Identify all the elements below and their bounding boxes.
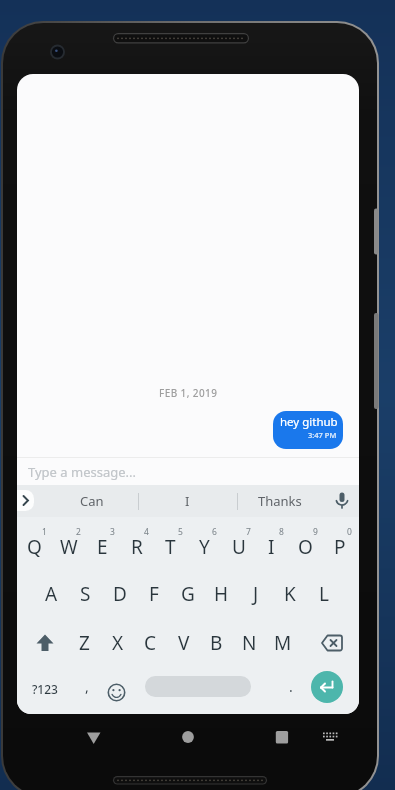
staticText: O — [298, 534, 313, 560]
staticText: Can — [80, 492, 104, 510]
staticText: FEB 1, 2019 — [159, 386, 218, 400]
staticText: I — [185, 492, 190, 510]
staticText: U — [232, 534, 246, 560]
staticText: W — [60, 534, 78, 560]
staticText: 1 — [42, 526, 47, 538]
button[interactable]: P — [323, 527, 356, 567]
button[interactable]: X — [102, 623, 133, 663]
button[interactable] — [25, 623, 65, 663]
button[interactable]: H — [205, 574, 238, 614]
button[interactable] — [315, 726, 345, 748]
staticText: L — [319, 581, 329, 607]
button[interactable]: M — [267, 623, 298, 663]
staticText: S — [80, 581, 91, 607]
button[interactable]: E — [86, 527, 119, 567]
button[interactable]: I — [157, 485, 217, 517]
button[interactable]: W — [52, 527, 85, 567]
button[interactable]: L — [307, 574, 340, 614]
button[interactable] — [173, 722, 203, 752]
staticText: V — [178, 630, 190, 656]
button[interactable]: R — [120, 527, 153, 567]
staticText: 4 — [144, 526, 149, 538]
staticText: B — [210, 630, 223, 656]
staticText: 2 — [76, 526, 81, 538]
button[interactable]: , — [75, 668, 99, 704]
staticText: E — [97, 534, 108, 560]
staticText: A — [45, 581, 58, 607]
staticText: P — [334, 534, 346, 560]
staticText: 5 — [178, 526, 183, 538]
staticText: ?123 — [32, 681, 58, 697]
button[interactable]: O — [289, 527, 322, 567]
staticText: 3:47 PM — [308, 430, 337, 440]
button[interactable]: hey github — [273, 411, 343, 449]
staticText: 6 — [212, 526, 217, 538]
staticText: 9 — [313, 526, 318, 538]
button[interactable]: G — [171, 574, 204, 614]
staticText: Thanks — [258, 492, 302, 510]
button[interactable]: Can — [57, 485, 127, 517]
staticText: Y — [199, 534, 210, 560]
button[interactable] — [79, 726, 109, 750]
button[interactable]: Z — [69, 623, 100, 663]
staticText: 3 — [110, 526, 115, 538]
button[interactable] — [267, 722, 297, 752]
button[interactable]: F — [137, 574, 170, 614]
staticText: F — [149, 581, 159, 607]
button[interactable] — [312, 623, 352, 663]
button[interactable] — [17, 490, 34, 511]
button[interactable]: U — [222, 527, 255, 567]
button[interactable]: Type a message... — [17, 458, 359, 485]
staticText: 7 — [246, 526, 251, 538]
button[interactable]: I — [255, 527, 288, 567]
button[interactable]: Q — [18, 527, 51, 567]
button[interactable]: B — [201, 623, 232, 663]
staticText: D — [113, 581, 127, 607]
staticText: M — [274, 630, 292, 656]
button[interactable]: J — [239, 574, 272, 614]
button[interactable]: Thanks — [240, 485, 320, 517]
button[interactable]: C — [135, 623, 166, 663]
button[interactable] — [311, 671, 343, 703]
staticText: . — [289, 677, 293, 696]
staticText: Z — [79, 630, 90, 656]
button[interactable]: Y — [188, 527, 221, 567]
button[interactable]: T — [154, 527, 187, 567]
staticText: Type a message... — [28, 463, 136, 481]
staticText: K — [284, 581, 296, 607]
button[interactable] — [325, 485, 359, 517]
staticText: I — [268, 534, 275, 560]
staticText: T — [165, 534, 176, 560]
staticText: hey github — [280, 414, 337, 430]
staticText: X — [112, 630, 124, 656]
button[interactable]: N — [234, 623, 265, 663]
button[interactable]: A — [35, 574, 68, 614]
button[interactable]: ?123 — [22, 671, 68, 707]
button[interactable]: . — [279, 668, 303, 704]
staticText: G — [181, 581, 195, 607]
staticText: 8 — [279, 526, 284, 538]
staticText: R — [131, 534, 143, 560]
button[interactable]: V — [168, 623, 199, 663]
button[interactable]: D — [103, 574, 136, 614]
staticText: C — [144, 630, 157, 656]
staticText: 0 — [347, 526, 352, 538]
staticText: , — [85, 677, 89, 696]
button[interactable]: S — [69, 574, 102, 614]
button[interactable] — [100, 676, 132, 708]
staticText: H — [214, 581, 229, 607]
staticText: J — [253, 581, 259, 607]
button[interactable]: K — [273, 574, 306, 614]
button[interactable] — [145, 676, 251, 697]
staticText: N — [242, 630, 257, 656]
staticText: Q — [27, 534, 42, 560]
